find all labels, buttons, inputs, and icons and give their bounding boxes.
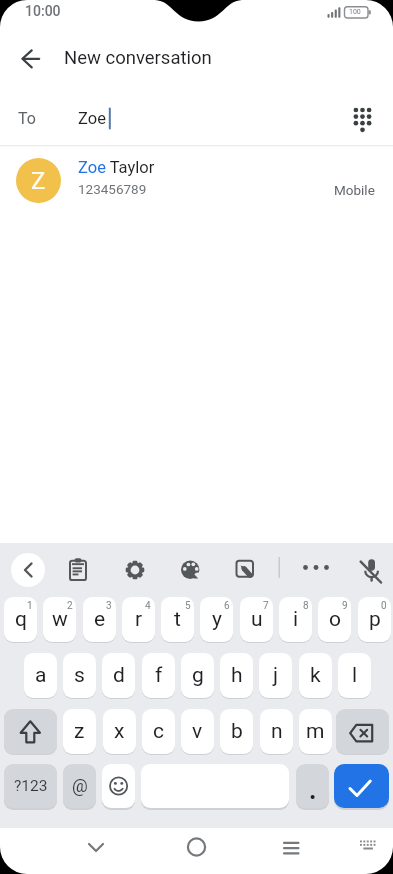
button[interactable]: y xyxy=(200,597,233,642)
staticText: s xyxy=(74,663,85,688)
staticText: j xyxy=(273,663,279,688)
staticText: g xyxy=(192,663,204,688)
staticText: 2 xyxy=(67,600,73,612)
staticText: w xyxy=(52,607,68,632)
button[interactable]: m xyxy=(299,709,332,754)
staticText: To xyxy=(18,109,36,128)
staticText: 123456789 xyxy=(78,181,147,197)
staticText: 7 xyxy=(263,600,269,612)
staticText: k xyxy=(310,663,321,688)
staticText: 10:00 xyxy=(25,3,61,19)
staticText: a xyxy=(35,663,47,688)
button[interactable]: @ xyxy=(63,764,96,808)
button[interactable]: p xyxy=(358,597,391,642)
button[interactable]: f xyxy=(142,653,175,698)
button[interactable]: h xyxy=(220,653,253,698)
staticText: 9 xyxy=(342,600,348,612)
staticText: n xyxy=(271,719,283,744)
button[interactable]: u xyxy=(240,597,273,642)
button[interactable]: j xyxy=(259,653,292,698)
button[interactable]: w xyxy=(43,597,76,642)
staticText: 3 xyxy=(106,600,112,612)
staticText: h xyxy=(231,663,243,688)
staticText: f xyxy=(155,663,163,688)
staticText: r xyxy=(135,607,143,632)
button[interactable] xyxy=(56,95,340,140)
button[interactable] xyxy=(336,709,389,754)
button[interactable]: s xyxy=(63,653,96,698)
button[interactable] xyxy=(172,823,220,871)
button[interactable] xyxy=(115,550,155,590)
button[interactable] xyxy=(296,550,336,590)
button[interactable]: e xyxy=(83,597,116,642)
button[interactable]: o xyxy=(318,597,351,642)
staticText: y xyxy=(212,607,222,632)
button[interactable] xyxy=(141,764,289,808)
staticText: m xyxy=(306,719,325,744)
button[interactable] xyxy=(14,43,48,77)
staticText: v xyxy=(192,719,203,744)
button[interactable]: t xyxy=(161,597,194,642)
staticText: o xyxy=(329,607,341,632)
staticText: Mobile xyxy=(334,182,375,198)
button[interactable] xyxy=(342,96,384,138)
staticText: d xyxy=(113,663,125,688)
staticText: b xyxy=(231,719,243,744)
button[interactable] xyxy=(296,764,329,808)
staticText: 1 xyxy=(27,600,33,612)
button[interactable]: c xyxy=(142,709,175,754)
staticText: Zoe xyxy=(78,109,106,128)
button[interactable]: b xyxy=(220,709,253,754)
button[interactable]: v xyxy=(181,709,214,754)
staticText: 4 xyxy=(145,600,151,612)
staticText: Z xyxy=(31,167,46,195)
staticText: c xyxy=(153,719,164,744)
button[interactable] xyxy=(72,823,120,871)
button[interactable]: z xyxy=(63,709,96,754)
staticText: 6 xyxy=(224,600,230,612)
button[interactable]: q xyxy=(4,597,37,642)
button[interactable] xyxy=(267,823,315,871)
button[interactable]: n xyxy=(260,709,293,754)
button[interactable]: x xyxy=(103,709,136,754)
button[interactable] xyxy=(102,764,135,808)
button[interactable] xyxy=(352,832,384,860)
button[interactable]: d xyxy=(102,653,135,698)
button[interactable] xyxy=(225,550,265,590)
staticText: q xyxy=(15,607,27,632)
button[interactable]: r xyxy=(122,597,155,642)
staticText: u xyxy=(251,607,263,632)
staticText: x xyxy=(114,719,125,744)
button[interactable]: g xyxy=(181,653,214,698)
staticText: e xyxy=(94,607,106,632)
staticText: New conversation xyxy=(64,47,212,69)
staticText: ?123 xyxy=(14,777,48,795)
staticText: l xyxy=(352,663,358,688)
staticText: i xyxy=(293,607,299,632)
staticText: 100 xyxy=(349,8,361,16)
staticText: 8 xyxy=(303,600,309,612)
button[interactable]: a xyxy=(24,653,57,698)
staticText: 0 xyxy=(381,600,387,612)
staticText: @ xyxy=(72,776,88,797)
button[interactable] xyxy=(4,709,57,754)
button[interactable]: Z xyxy=(0,150,393,210)
button[interactable] xyxy=(172,550,212,590)
button[interactable]: ?123 xyxy=(4,764,57,808)
button[interactable] xyxy=(351,550,391,590)
button[interactable] xyxy=(58,550,98,590)
button[interactable] xyxy=(11,553,45,587)
button[interactable] xyxy=(334,764,389,808)
button[interactable]: l xyxy=(338,653,371,698)
staticText: z xyxy=(74,719,85,744)
button[interactable]: k xyxy=(299,653,332,698)
staticText: t xyxy=(174,607,181,632)
staticText: p xyxy=(369,607,381,632)
staticText: Zoe Taylor xyxy=(78,158,155,177)
button[interactable]: i xyxy=(279,597,312,642)
staticText: 5 xyxy=(185,600,191,612)
